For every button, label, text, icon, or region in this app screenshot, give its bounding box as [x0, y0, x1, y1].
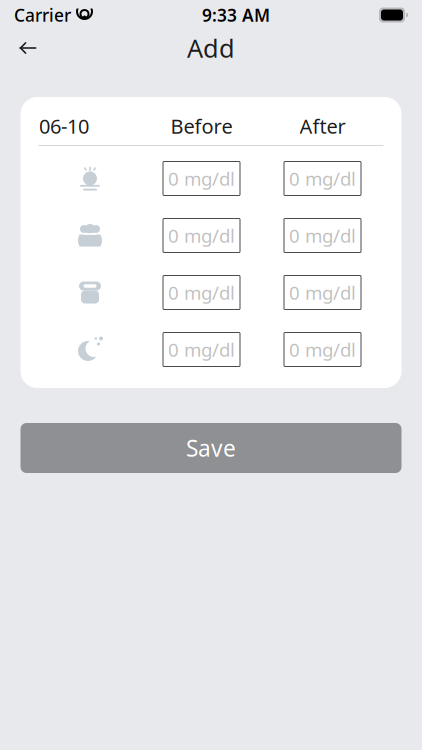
staticText: 06-10	[39, 113, 89, 139]
staticText: After	[299, 113, 345, 139]
staticText: 0 mg/dl	[289, 337, 356, 362]
button[interactable]: Blood glucose value, 0 mg/dl	[284, 275, 361, 309]
staticText: 0 mg/dl	[168, 223, 235, 248]
staticText: 0 mg/dl	[168, 280, 235, 305]
button[interactable]: Blood glucose value, 0 mg/dl	[284, 161, 361, 195]
button[interactable]: Back	[6, 30, 50, 66]
button[interactable]: Blood glucose value, 0 mg/dl	[163, 218, 240, 252]
staticText: 9:33 AM	[202, 3, 270, 26]
staticText: Add	[187, 31, 235, 65]
button[interactable]: Blood glucose value, 0 mg/dl	[284, 218, 361, 252]
button[interactable]: Blood glucose value, 0 mg/dl	[163, 161, 240, 195]
staticText: Before	[170, 113, 232, 139]
staticText: 0 mg/dl	[289, 166, 356, 191]
staticText: 0 mg/dl	[289, 280, 356, 305]
staticText: 0 mg/dl	[289, 223, 356, 248]
button[interactable]: Blood glucose value, 0 mg/dl	[163, 275, 240, 309]
button[interactable]: Save	[20, 423, 401, 473]
staticText: Save	[186, 433, 236, 463]
button[interactable]: Blood glucose value, 0 mg/dl	[163, 332, 240, 366]
button[interactable]: Blood glucose value, 0 mg/dl	[284, 332, 361, 366]
staticText: 0 mg/dl	[168, 166, 235, 191]
staticText: Carrier	[14, 3, 71, 26]
staticText: 0 mg/dl	[168, 337, 235, 362]
